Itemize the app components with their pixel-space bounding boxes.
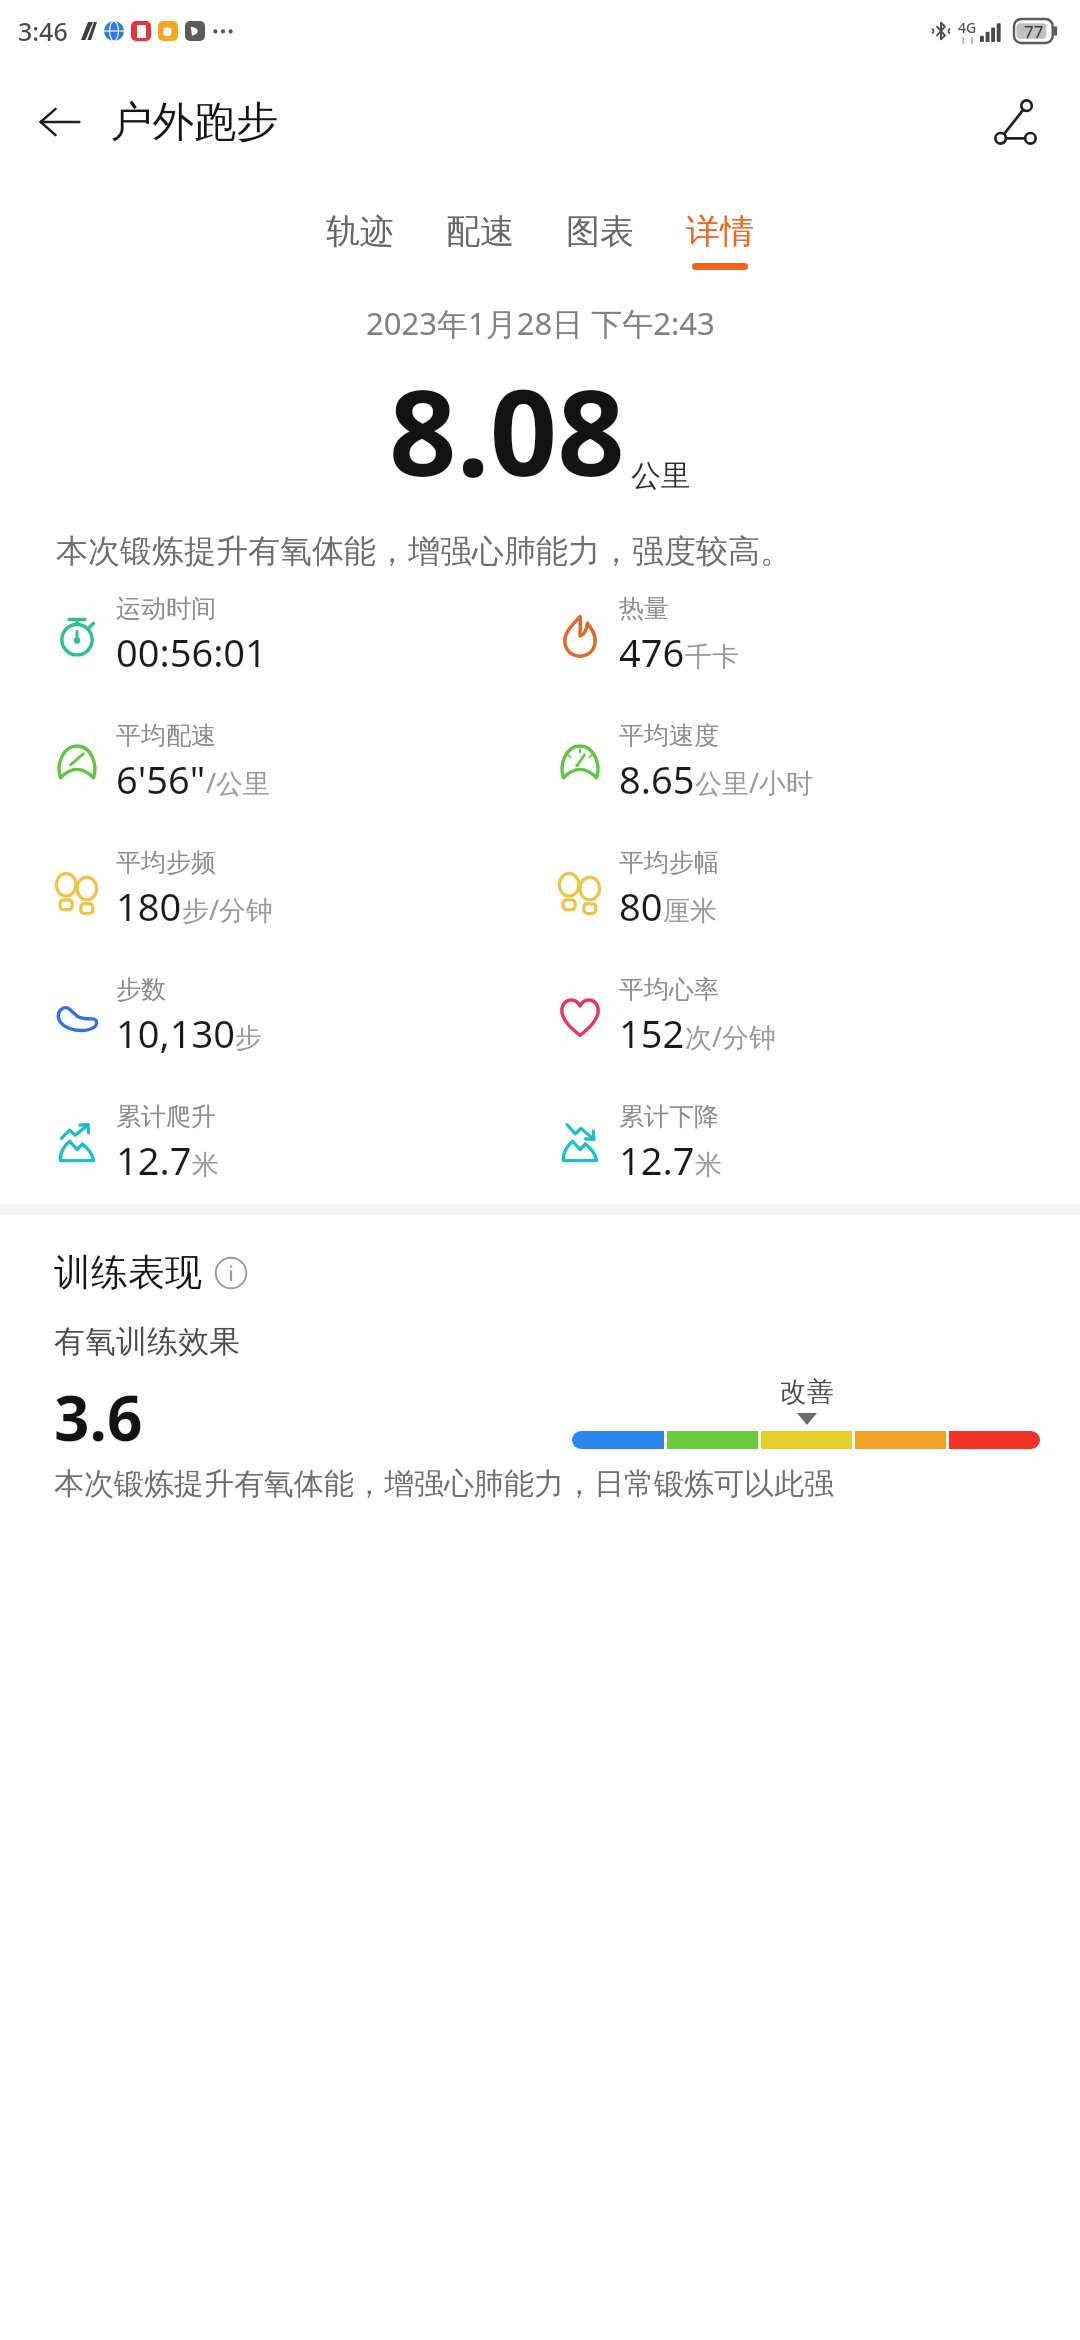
- staticText: 改善: [780, 1375, 834, 1409]
- staticText: 户外跑步: [110, 96, 278, 149]
- button[interactable]: 平均配速: [54, 720, 557, 805]
- staticText: 180: [116, 880, 182, 932]
- staticText: 轨迹: [326, 210, 394, 253]
- button[interactable]: 累计爬升: [54, 1101, 557, 1186]
- staticText: 千卡: [685, 640, 739, 674]
- staticText: 77: [1024, 20, 1044, 43]
- staticText: 6'56": [116, 753, 206, 805]
- button[interactable]: 图表: [540, 204, 660, 276]
- staticText: 本次锻炼提升有氧体能，增强心肺能力，日常锻炼可以此强: [54, 1465, 834, 1503]
- staticText: 8.65: [619, 753, 695, 805]
- staticText: 4G: [958, 18, 977, 37]
- button[interactable]: 轨迹: [300, 204, 420, 276]
- button[interactable]: Back: [24, 86, 96, 158]
- staticText: 2023年1月28日 下午2:43: [366, 302, 715, 344]
- button[interactable]: Share: [980, 86, 1052, 158]
- staticText: 米: [192, 1148, 219, 1182]
- staticText: 厘米: [663, 894, 717, 928]
- staticText: 平均步幅: [619, 847, 719, 878]
- staticText: 00:56:01: [116, 626, 267, 678]
- staticText: 本次锻炼提升有氧体能，增强心肺能力，强度较高。: [56, 531, 792, 571]
- staticText: 平均配速: [116, 720, 216, 751]
- button[interactable]: 平均步幅: [557, 847, 1060, 932]
- other: Info: [214, 1256, 248, 1290]
- staticText: 有氧训练效果: [54, 1322, 240, 1361]
- staticText: 8.08: [389, 350, 625, 511]
- staticText: 图表: [566, 210, 634, 253]
- button[interactable]: 训练表现: [54, 1249, 248, 1296]
- staticText: 平均速度: [619, 720, 719, 751]
- button[interactable]: 平均步频: [54, 847, 557, 932]
- staticText: 12.7: [116, 1134, 192, 1186]
- staticText: 训练表现: [54, 1249, 202, 1296]
- button[interactable]: 热量: [557, 593, 1060, 678]
- staticText: 80: [619, 880, 663, 932]
- button[interactable]: 平均速度: [557, 720, 1060, 805]
- staticText: /公里: [206, 764, 271, 801]
- staticText: 配速: [446, 210, 514, 253]
- staticText: 步数: [116, 974, 166, 1005]
- staticText: 公里/小时: [695, 764, 814, 801]
- button[interactable]: 累计下降: [557, 1101, 1060, 1186]
- button[interactable]: 平均心率: [557, 974, 1060, 1059]
- staticText: 步: [235, 1021, 262, 1055]
- staticText: 10,130: [116, 1007, 235, 1059]
- staticText: 累计爬升: [116, 1101, 216, 1132]
- staticText: 米: [695, 1148, 722, 1182]
- staticText: 次/分钟: [685, 1018, 777, 1055]
- staticText: 平均步频: [116, 847, 216, 878]
- staticText: 详情: [686, 210, 754, 253]
- button[interactable]: 步数: [54, 974, 557, 1059]
- staticText: 3.6: [54, 1375, 143, 1459]
- button[interactable]: 详情: [660, 204, 780, 276]
- staticText: 3:46: [18, 14, 68, 48]
- staticText: 476: [619, 626, 685, 678]
- staticText: 运动时间: [116, 593, 216, 624]
- staticText: 平均心率: [619, 974, 719, 1005]
- button[interactable]: 配速: [420, 204, 540, 276]
- staticText: 步/分钟: [182, 891, 274, 928]
- staticText: 热量: [619, 593, 669, 624]
- button[interactable]: 运动时间: [54, 593, 557, 678]
- staticText: 152: [619, 1007, 685, 1059]
- staticText: 公里: [631, 457, 691, 495]
- staticText: 12.7: [619, 1134, 695, 1186]
- staticText: 累计下降: [619, 1101, 719, 1132]
